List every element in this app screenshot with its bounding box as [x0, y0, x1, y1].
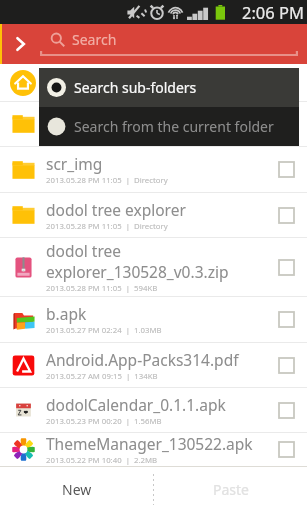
button[interactable]: Select dodol tree: [266, 238, 307, 296]
staticText: 2:06 PM: [242, 1, 304, 23]
button[interactable]: Android.App-Packs314.pdf: [0, 343, 307, 387]
button[interactable]: Open navigation drawer: [0, 24, 40, 64]
staticText: Search from the current folder: [74, 117, 274, 136]
staticText: ThemeManager_130522.apk: [46, 433, 253, 454]
staticText: Android.App-Packs314.pdf: [46, 349, 239, 370]
staticText: 2013.05.28 PM 11:05 | 594KB: [46, 283, 158, 294]
button[interactable]: Select dodol tree explorer: [266, 193, 307, 237]
staticText: 2013.05.22 PM 10:40 | 2.2MB: [46, 455, 158, 466]
staticText: dodol tree explorer: [46, 199, 186, 220]
button[interactable]: dodol tree: [0, 238, 307, 296]
button[interactable]: Select scr_img: [266, 147, 307, 192]
button[interactable]: Paste: [154, 467, 307, 512]
staticText: New: [62, 480, 92, 499]
staticText: b.apk: [46, 303, 87, 324]
staticText: explorer_130528_v0.3.zip: [46, 261, 229, 282]
staticText: Search: [72, 30, 117, 49]
staticText: 2013.05.28 PM 11:05 | Directory: [46, 175, 168, 186]
button[interactable]: b.apk: [0, 297, 307, 342]
staticText: 2013.05.28 PM 11:05 | Directory: [46, 221, 168, 232]
button[interactable]: Select Android.App-Packs314.pdf: [266, 343, 307, 387]
staticText: Search sub-folders: [74, 78, 197, 97]
button[interactable]: dodolCalendar_0.1.1.apk: [0, 388, 307, 432]
button[interactable]: [0, 64, 307, 101]
button[interactable]: scr_img: [0, 147, 307, 192]
button[interactable]: New: [0, 467, 153, 512]
staticText: 2013.05.27 AM 09:15 | 134KB: [46, 371, 158, 382]
button[interactable]: Select b.apk: [266, 297, 307, 342]
staticText: dodol tree: [46, 240, 122, 261]
button[interactable]: Search: [40, 24, 298, 64]
staticText: 2013.05.27 PM 02:24 | 1.03MB: [46, 325, 162, 336]
staticText: Paste: [213, 480, 249, 499]
button[interactable]: ThemeManager_130522.apk: [0, 433, 307, 466]
button[interactable]: Select ThemeManager_130522.apk: [266, 433, 307, 466]
staticText: 2013.05.23 PM 00:20 | 1.56MB: [46, 416, 162, 427]
button[interactable]: Search from the current folder: [39, 107, 299, 146]
staticText: dodolCalendar_0.1.1.apk: [46, 394, 226, 415]
button[interactable]: Select dodolCalendar_0.1.1.apk: [266, 388, 307, 432]
button[interactable]: dodol tree explorer: [0, 193, 307, 237]
button[interactable]: [0, 102, 307, 146]
button[interactable]: Search sub-folders: [39, 68, 299, 107]
staticText: scr_img: [46, 153, 103, 174]
